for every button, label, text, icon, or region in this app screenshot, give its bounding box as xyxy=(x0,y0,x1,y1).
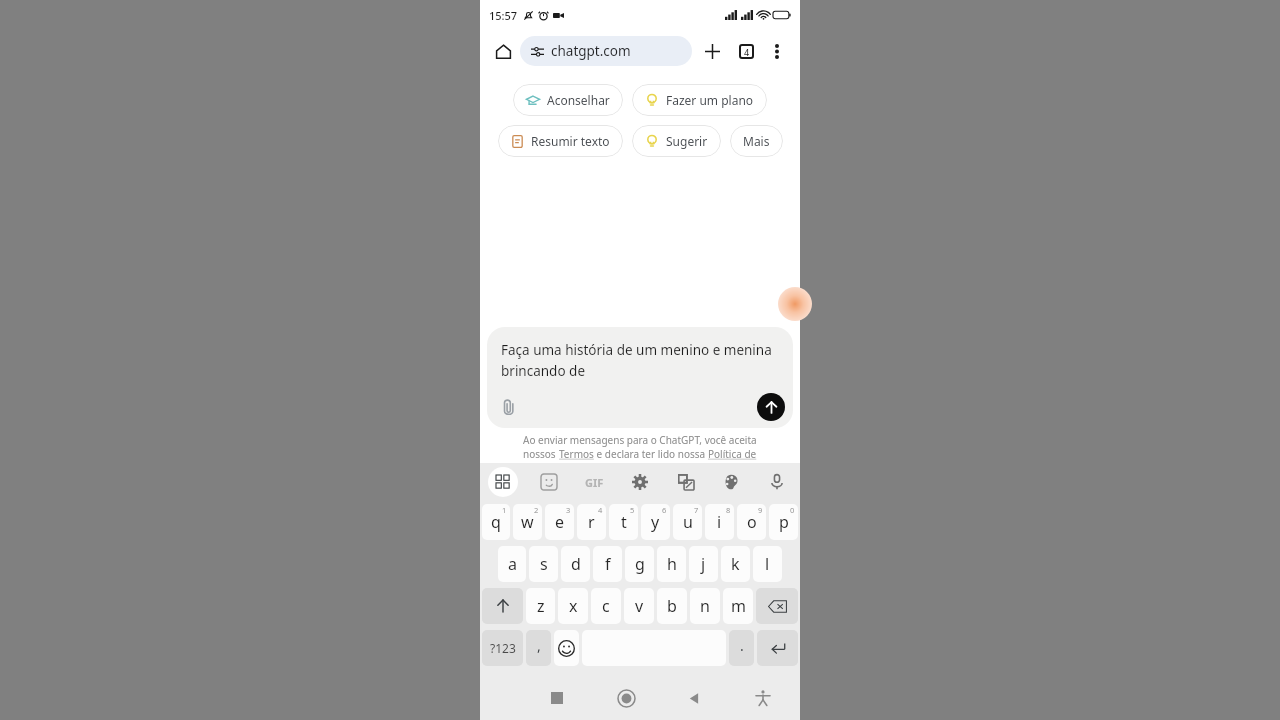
button[interactable]: Enter xyxy=(757,630,798,666)
button[interactable]: Emoji xyxy=(554,630,579,666)
button[interactable]: w xyxy=(513,504,542,540)
button[interactable]: Termos xyxy=(559,447,594,461)
staticText: s xyxy=(540,553,548,575)
button[interactable]: Attach file xyxy=(495,393,523,421)
button[interactable]: ?123 xyxy=(482,630,523,666)
button[interactable]: Resumir texto xyxy=(498,125,623,157)
button[interactable]: Home xyxy=(490,38,516,64)
button[interactable]: Settings xyxy=(625,467,655,497)
button[interactable]: Sugerir xyxy=(632,125,721,157)
button[interactable]: chatgpt.com xyxy=(520,36,692,66)
button[interactable]: m xyxy=(723,588,753,624)
staticText: c xyxy=(602,595,610,617)
button[interactable]: x xyxy=(558,588,588,624)
staticText: h xyxy=(667,553,677,575)
button[interactable]: b xyxy=(657,588,687,624)
staticText: z xyxy=(537,595,545,617)
button[interactable]: p xyxy=(769,504,798,540)
button[interactable]: r xyxy=(577,504,606,540)
staticText: Faça uma história de um menino e menina … xyxy=(501,341,779,380)
button[interactable]: v xyxy=(624,588,654,624)
button[interactable]: Mais xyxy=(730,125,783,157)
staticText: m xyxy=(731,595,746,617)
button[interactable]: a xyxy=(498,546,526,582)
staticText: 1 xyxy=(502,505,507,515)
staticText: t xyxy=(621,511,627,533)
button[interactable]: Faça uma história de um menino e menina … xyxy=(487,327,793,428)
button[interactable]: Accessibility xyxy=(746,681,780,715)
staticText: 9 xyxy=(758,505,763,515)
button[interactable]: u xyxy=(673,504,702,540)
button[interactable]: Voice input xyxy=(762,467,792,497)
button[interactable]: y xyxy=(641,504,670,540)
staticText: j xyxy=(701,553,706,575)
button[interactable]: s xyxy=(529,546,558,582)
button[interactable]: f xyxy=(593,546,622,582)
staticText: 4 xyxy=(598,505,603,515)
staticText: v xyxy=(635,595,644,617)
staticText: r xyxy=(588,511,595,533)
staticText: Mais xyxy=(743,133,770,149)
button[interactable]: Translate xyxy=(671,467,701,497)
staticText: . xyxy=(740,636,744,655)
staticText: q xyxy=(491,511,501,533)
button[interactable]: t xyxy=(609,504,638,540)
button[interactable]: Tabs xyxy=(732,37,760,65)
staticText: ?123 xyxy=(490,640,516,656)
staticText: Ao enviar mensagens para o ChatGPT, você… xyxy=(523,433,757,447)
staticText: o xyxy=(747,511,757,533)
button[interactable]: GIF xyxy=(579,467,609,497)
button[interactable]: Send xyxy=(757,393,785,421)
staticText: e declara ter lido nossa xyxy=(594,447,708,461)
staticText: 2 xyxy=(534,505,539,515)
button[interactable]: Política de xyxy=(708,447,757,461)
staticText: d xyxy=(571,553,581,575)
staticText: 0 xyxy=(790,505,795,515)
button[interactable]: More options xyxy=(764,38,790,64)
button[interactable]: i xyxy=(705,504,734,540)
button[interactable]: j xyxy=(689,546,718,582)
button[interactable]: Themes xyxy=(716,467,746,497)
button[interactable]: , xyxy=(526,630,551,666)
staticText: , xyxy=(537,636,541,655)
staticText: n xyxy=(700,595,710,617)
staticText: x xyxy=(569,595,578,617)
button[interactable]: . xyxy=(729,630,754,666)
staticText: e xyxy=(555,511,565,533)
staticText: i xyxy=(717,511,722,533)
button[interactable]: Stickers xyxy=(534,467,564,497)
staticText: u xyxy=(683,511,693,533)
button[interactable]: k xyxy=(721,546,750,582)
button[interactable]: q xyxy=(482,504,510,540)
button[interactable]: g xyxy=(625,546,654,582)
button[interactable]: Back xyxy=(677,681,711,715)
staticText: y xyxy=(651,511,660,533)
staticText: k xyxy=(731,553,740,575)
staticText: 8 xyxy=(726,505,731,515)
staticText: g xyxy=(635,553,645,575)
button[interactable]: Shift xyxy=(482,588,523,624)
staticText: 3 xyxy=(566,505,571,515)
button[interactable]: Aconselhar xyxy=(513,84,623,116)
button[interactable]: e xyxy=(545,504,574,540)
staticText: w xyxy=(521,511,534,533)
button[interactable]: n xyxy=(690,588,720,624)
staticText: 5 xyxy=(630,505,635,515)
button[interactable]: o xyxy=(737,504,766,540)
button[interactable]: h xyxy=(657,546,686,582)
button[interactable]: c xyxy=(591,588,621,624)
button[interactable]: z xyxy=(526,588,555,624)
staticText: a xyxy=(508,553,517,575)
button[interactable]: New tab xyxy=(698,37,726,65)
button[interactable]: d xyxy=(561,546,590,582)
button[interactable]: Keyboard modes xyxy=(488,467,518,497)
button[interactable]: Recent apps xyxy=(540,681,574,715)
staticText: chatgpt.com xyxy=(551,42,631,60)
staticText: 4 xyxy=(744,46,750,58)
button[interactable]: l xyxy=(753,546,782,582)
button[interactable]: Fazer um plano xyxy=(632,84,767,116)
button[interactable]: Home xyxy=(609,681,643,715)
button[interactable]: Backspace xyxy=(756,588,798,624)
button[interactable]: Assistant bubble xyxy=(778,287,812,321)
